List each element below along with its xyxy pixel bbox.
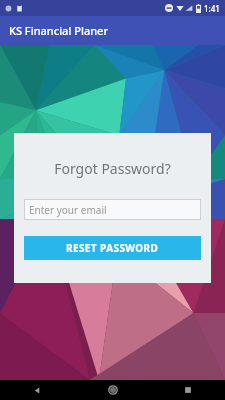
- button[interactable]: Enter your email: [24, 199, 201, 220]
- button[interactable]: Recent apps: [150, 380, 225, 400]
- staticText: Forgot Password?: [54, 159, 171, 178]
- button[interactable]: Back: [0, 380, 75, 400]
- button[interactable]: RESET PASSWORD: [24, 236, 201, 260]
- staticText: RESET PASSWORD: [66, 241, 159, 255]
- staticText: KS Financial Planer: [9, 23, 109, 38]
- staticText: Enter your email: [29, 203, 107, 217]
- staticText: 1:41: [204, 3, 220, 14]
- button[interactable]: Home: [75, 380, 150, 400]
